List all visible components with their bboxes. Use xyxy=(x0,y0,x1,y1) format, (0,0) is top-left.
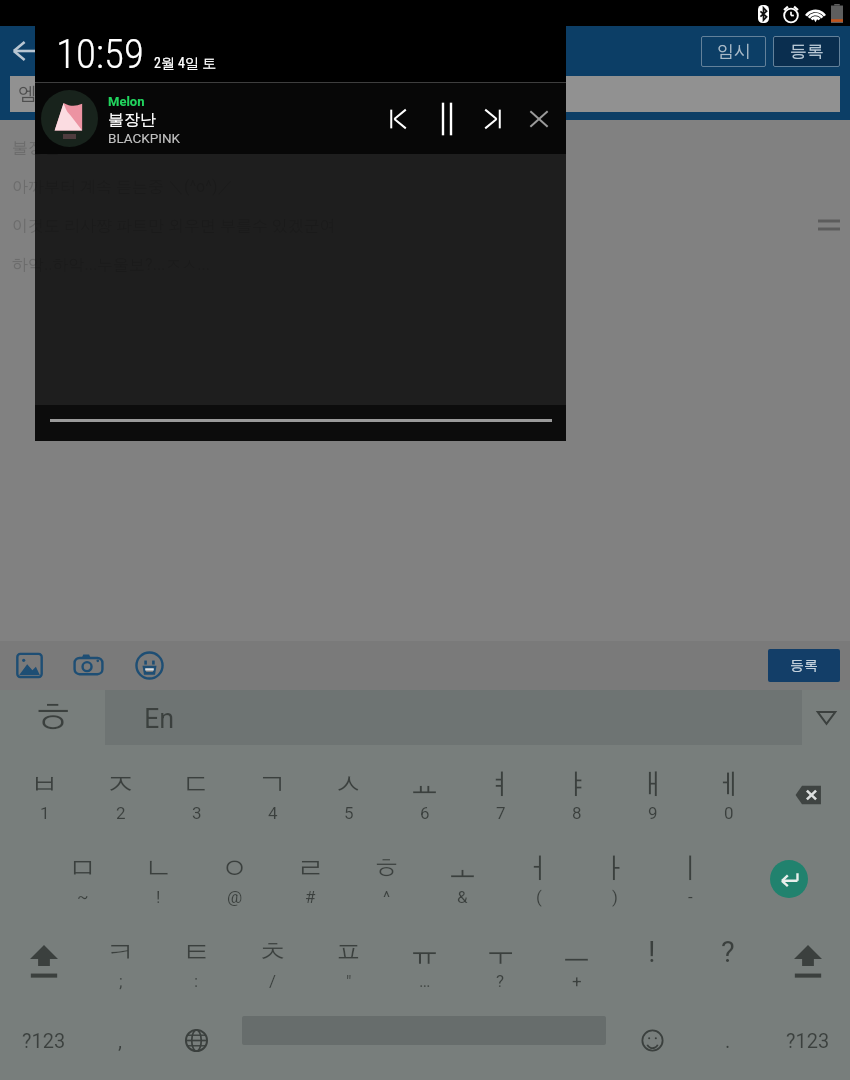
staticText: ㄱ xyxy=(258,766,287,803)
staticText: & xyxy=(457,887,468,907)
button[interactable]: Space xyxy=(234,997,614,1080)
staticText: ㅛ xyxy=(410,766,439,803)
staticText: ㅍ xyxy=(334,934,363,971)
button[interactable]: ㅗ xyxy=(424,829,500,913)
button[interactable]: 엠시 xyxy=(10,76,840,112)
staticText: ㅔ xyxy=(714,766,743,803)
staticText: 3 xyxy=(192,803,202,823)
staticText: 5 xyxy=(344,803,354,823)
button[interactable]: ㅂ xyxy=(6,745,82,829)
button[interactable]: ?123 xyxy=(6,997,82,1080)
staticText: 1 xyxy=(40,803,50,823)
staticText: # xyxy=(305,887,316,907)
button[interactable]: 등록 xyxy=(773,36,840,67)
button[interactable]: ㅈ xyxy=(82,745,158,829)
staticText: ㄴ xyxy=(144,850,173,887)
staticText: 아까부터 계속 듣는중 ＼(^o^)／ xyxy=(12,177,234,197)
staticText: 엠시 xyxy=(18,82,56,106)
button[interactable]: ㅣ xyxy=(652,829,728,913)
staticText: 10:59 xyxy=(56,30,144,78)
button[interactable]: ㅑ xyxy=(538,745,614,829)
button[interactable]: ㅓ xyxy=(500,829,576,913)
button[interactable]: ㅠ xyxy=(386,913,462,997)
button[interactable]: Emoji xyxy=(119,641,180,690)
button[interactable]: ㅜ xyxy=(462,913,538,997)
staticText: ㅎ xyxy=(31,690,75,745)
button[interactable]: Previous xyxy=(372,83,424,154)
staticText: 7 xyxy=(496,803,506,823)
button[interactable]: ㄹ xyxy=(272,829,348,913)
button[interactable]: 등록 xyxy=(768,649,840,682)
button[interactable]: Close xyxy=(516,83,562,154)
staticText: ㅣ xyxy=(676,850,705,887)
staticText: ㅡ xyxy=(562,934,591,971)
staticText: ㅇ xyxy=(220,850,249,887)
button[interactable]: ㅏ xyxy=(576,829,652,913)
button[interactable]: ㅛ xyxy=(386,745,462,829)
button[interactable]: ! xyxy=(614,913,690,997)
button[interactable]: ㄱ xyxy=(234,745,310,829)
button[interactable]: ㅡ xyxy=(538,913,614,997)
button[interactable]: Shift xyxy=(766,913,850,997)
button[interactable]: ㅎ xyxy=(348,829,424,913)
staticText: ; xyxy=(119,971,123,991)
button[interactable]: Shift xyxy=(6,913,82,997)
staticText: BLACKPINK xyxy=(108,130,181,146)
staticText: ?123 xyxy=(22,1029,66,1052)
button[interactable]: Pause xyxy=(424,83,470,154)
staticText: 2월 4일 토 xyxy=(154,55,217,73)
button[interactable]: Change language xyxy=(158,997,234,1080)
button[interactable]: ?123 xyxy=(766,997,850,1080)
button[interactable]: En xyxy=(105,690,802,745)
button[interactable]: ㅋ xyxy=(82,913,158,997)
button[interactable]: Melon xyxy=(35,83,566,154)
staticText: ㅊ xyxy=(258,934,287,971)
staticText: " xyxy=(346,971,352,991)
button[interactable]: Enter xyxy=(728,829,850,913)
staticText: ㅠ xyxy=(410,934,439,971)
button[interactable]: ㄴ xyxy=(120,829,196,913)
staticText: ( xyxy=(536,887,542,907)
staticText: - xyxy=(688,887,693,907)
staticText: ^ xyxy=(383,887,391,907)
staticText: . xyxy=(725,1029,731,1052)
button[interactable]: ㅌ xyxy=(158,913,234,997)
button[interactable]: Expand keyboard xyxy=(802,690,850,745)
staticText: 불장난 xyxy=(12,138,60,158)
staticText: ㅅ xyxy=(334,766,363,803)
staticText: 하악..하악...누울보?...ㅈㅅ... xyxy=(12,255,210,275)
button[interactable]: ㅅ xyxy=(310,745,386,829)
button[interactable]: ㅕ xyxy=(462,745,538,829)
staticText: ㄷ xyxy=(182,766,211,803)
button[interactable]: ㅁ xyxy=(44,829,120,913)
button[interactable]: Add image xyxy=(0,641,58,690)
staticText: ㅎ xyxy=(372,850,401,887)
staticText: / xyxy=(269,971,277,991)
staticText: 6 xyxy=(420,803,430,823)
button[interactable]: 임시 xyxy=(701,36,766,67)
button[interactable]: ㄷ xyxy=(158,745,234,829)
staticText: ㅜ xyxy=(486,934,515,971)
staticText: 등록 xyxy=(790,41,824,62)
staticText: ?123 xyxy=(786,1029,830,1052)
button[interactable]: ㅍ xyxy=(310,913,386,997)
button[interactable]: ㅎ xyxy=(0,690,105,745)
button[interactable]: ? xyxy=(690,913,766,997)
button[interactable]: Backspace xyxy=(766,745,850,829)
staticText: ㅗ xyxy=(448,850,477,887)
button[interactable]: Back xyxy=(4,28,50,74)
staticText: : xyxy=(194,971,199,991)
staticText: + xyxy=(572,971,582,991)
staticText: ~ xyxy=(77,887,89,907)
button[interactable]: Next xyxy=(470,83,516,154)
button[interactable]: Emoji xyxy=(614,997,690,1080)
button[interactable]: ㅔ xyxy=(690,745,766,829)
button[interactable]: ㅊ xyxy=(234,913,310,997)
button[interactable]: ㅐ xyxy=(614,745,690,829)
button[interactable]: Camera xyxy=(58,641,119,690)
staticText: ㅓ xyxy=(524,850,553,887)
staticText: 이것도 리사쨩 파트만 외우면 부를수 있겠군여 xyxy=(12,216,336,236)
button[interactable]: ㅇ xyxy=(196,829,272,913)
